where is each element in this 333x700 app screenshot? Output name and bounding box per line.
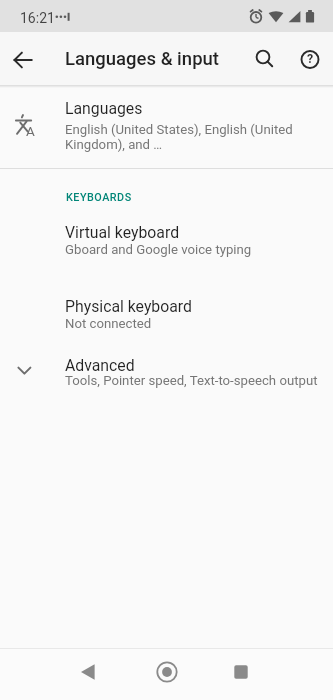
button[interactable]: ? xyxy=(288,32,333,85)
staticText: KEYBOARDS xyxy=(66,191,132,204)
staticText: Tools, Pointer speed, Text-to-speech out… xyxy=(65,373,318,388)
staticText: Virtual keyboard xyxy=(65,223,180,242)
button[interactable]: Virtual keyboard xyxy=(0,212,333,268)
button[interactable] xyxy=(0,32,48,85)
button[interactable]: Advanced xyxy=(0,345,333,401)
staticText: English (United States), English (United… xyxy=(65,122,293,152)
button[interactable]: A xyxy=(0,85,333,168)
staticText: Not connected xyxy=(65,316,152,331)
button[interactable] xyxy=(66,654,110,698)
staticText: Languages xyxy=(65,99,143,118)
staticText: Languages & input xyxy=(65,48,219,70)
staticText: 16:21 xyxy=(20,10,55,26)
staticText: Gboard and Google voice typing xyxy=(65,242,252,257)
staticText: ? xyxy=(307,51,314,66)
staticText: A xyxy=(26,123,35,139)
button[interactable]: Physical keyboard xyxy=(0,287,333,343)
button[interactable] xyxy=(243,32,287,85)
staticText: Physical keyboard xyxy=(65,297,192,316)
button[interactable] xyxy=(145,654,189,698)
staticText: Advanced xyxy=(65,356,135,375)
button[interactable] xyxy=(219,654,263,698)
